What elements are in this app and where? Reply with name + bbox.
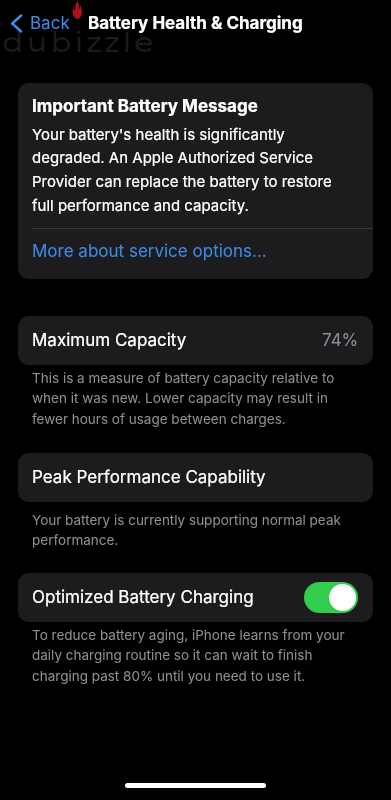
staticText: Battery Health & Charging	[88, 13, 303, 34]
staticText: Peak Performance Capability	[32, 467, 266, 488]
button[interactable]: Back	[6, 7, 76, 40]
staticText: dubizzle	[1, 25, 156, 59]
staticText: To reduce battery aging, iPhone learns f…	[32, 627, 367, 685]
button[interactable]: More about service options...	[18, 229, 373, 279]
staticText: More about service options...	[32, 241, 267, 262]
staticText: Your battery is currently supporting nor…	[32, 512, 367, 549]
staticText: Maximum Capacity	[32, 330, 187, 351]
staticText: Your battery's health is significantly d…	[32, 125, 342, 214]
staticText: This is a measure of battery capacity re…	[32, 370, 367, 428]
button[interactable]: Optimized Battery Charging, on	[304, 582, 358, 613]
button[interactable]: Peak Performance Capability	[18, 453, 373, 502]
button[interactable]: Maximum Capacity	[18, 316, 373, 365]
staticText: Important Battery Message	[32, 96, 258, 117]
staticText: Optimized Battery Charging	[32, 587, 254, 608]
staticText: Back	[30, 13, 70, 34]
staticText: 74%	[322, 330, 359, 351]
